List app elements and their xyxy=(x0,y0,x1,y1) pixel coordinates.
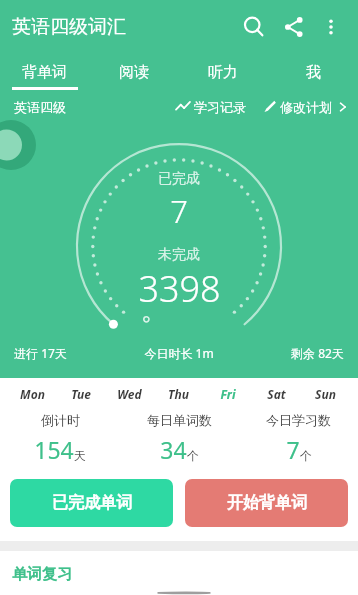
button[interactable]: Search xyxy=(234,7,274,47)
staticText: 7 xyxy=(286,434,300,465)
button[interactable]: Share xyxy=(274,7,314,47)
button[interactable]: Mon xyxy=(8,386,56,402)
button[interactable]: 修改计划 xyxy=(262,99,348,115)
staticText: 已完成单词 xyxy=(52,493,132,513)
staticText: 单词复习 xyxy=(12,565,72,584)
button[interactable]: 已完成单词 xyxy=(10,479,173,527)
staticText: Thu xyxy=(168,386,189,402)
staticText: 今日时长 1m xyxy=(144,345,214,361)
staticText: 我 xyxy=(306,63,321,82)
staticText: 7 xyxy=(170,190,188,232)
staticText: 英语四级词汇 xyxy=(12,15,126,39)
staticText: 听力 xyxy=(208,63,238,82)
staticText: Wed xyxy=(117,386,142,402)
staticText: 天 xyxy=(74,448,86,463)
staticText: 倒计时 xyxy=(41,412,80,428)
button[interactable]: Wed xyxy=(105,386,154,402)
staticText: 154 xyxy=(34,434,74,465)
staticText: 个 xyxy=(187,448,199,463)
button[interactable]: 今日学习数 xyxy=(239,412,358,465)
staticText: 个 xyxy=(300,448,312,463)
button[interactable]: 听力 xyxy=(178,54,268,90)
button[interactable]: 背单词 xyxy=(0,54,89,90)
button[interactable]: 倒计时 xyxy=(0,412,120,465)
staticText: 背单词 xyxy=(22,63,67,82)
staticText: 34 xyxy=(160,434,187,465)
button[interactable]: Sat xyxy=(252,386,301,402)
button[interactable]: 我 xyxy=(268,54,358,90)
staticText: 开始背单词 xyxy=(227,493,307,513)
staticText: 未完成 xyxy=(158,246,200,264)
staticText: Tue xyxy=(71,386,91,402)
staticText: 已完成 xyxy=(158,170,200,188)
button[interactable]: Sun xyxy=(301,386,350,402)
staticText: 阅读 xyxy=(119,63,149,82)
button[interactable]: 每日单词数 xyxy=(120,412,239,465)
staticText: 学习记录 xyxy=(194,99,246,115)
staticText: Sun xyxy=(315,386,336,402)
button[interactable]: More options xyxy=(314,10,348,44)
button[interactable]: Fri xyxy=(203,386,252,402)
button[interactable]: 开始背单词 xyxy=(185,479,348,527)
button[interactable]: Tue xyxy=(56,386,105,402)
staticText: 今日学习数 xyxy=(266,412,331,428)
staticText: Mon xyxy=(20,386,45,402)
staticText: 英语四级 xyxy=(14,99,66,115)
staticText: 3398 xyxy=(138,264,221,313)
staticText: Sat xyxy=(267,386,286,402)
button[interactable]: Thu xyxy=(154,386,203,402)
button[interactable]: 阅读 xyxy=(89,54,178,90)
staticText: 每日单词数 xyxy=(147,412,212,428)
staticText: 进行 17天 xyxy=(14,345,67,361)
staticText: Fri xyxy=(220,386,236,402)
staticText: 修改计划 xyxy=(280,99,332,115)
button[interactable]: 学习记录 xyxy=(176,99,246,115)
staticText: 剩余 82天 xyxy=(291,345,344,361)
